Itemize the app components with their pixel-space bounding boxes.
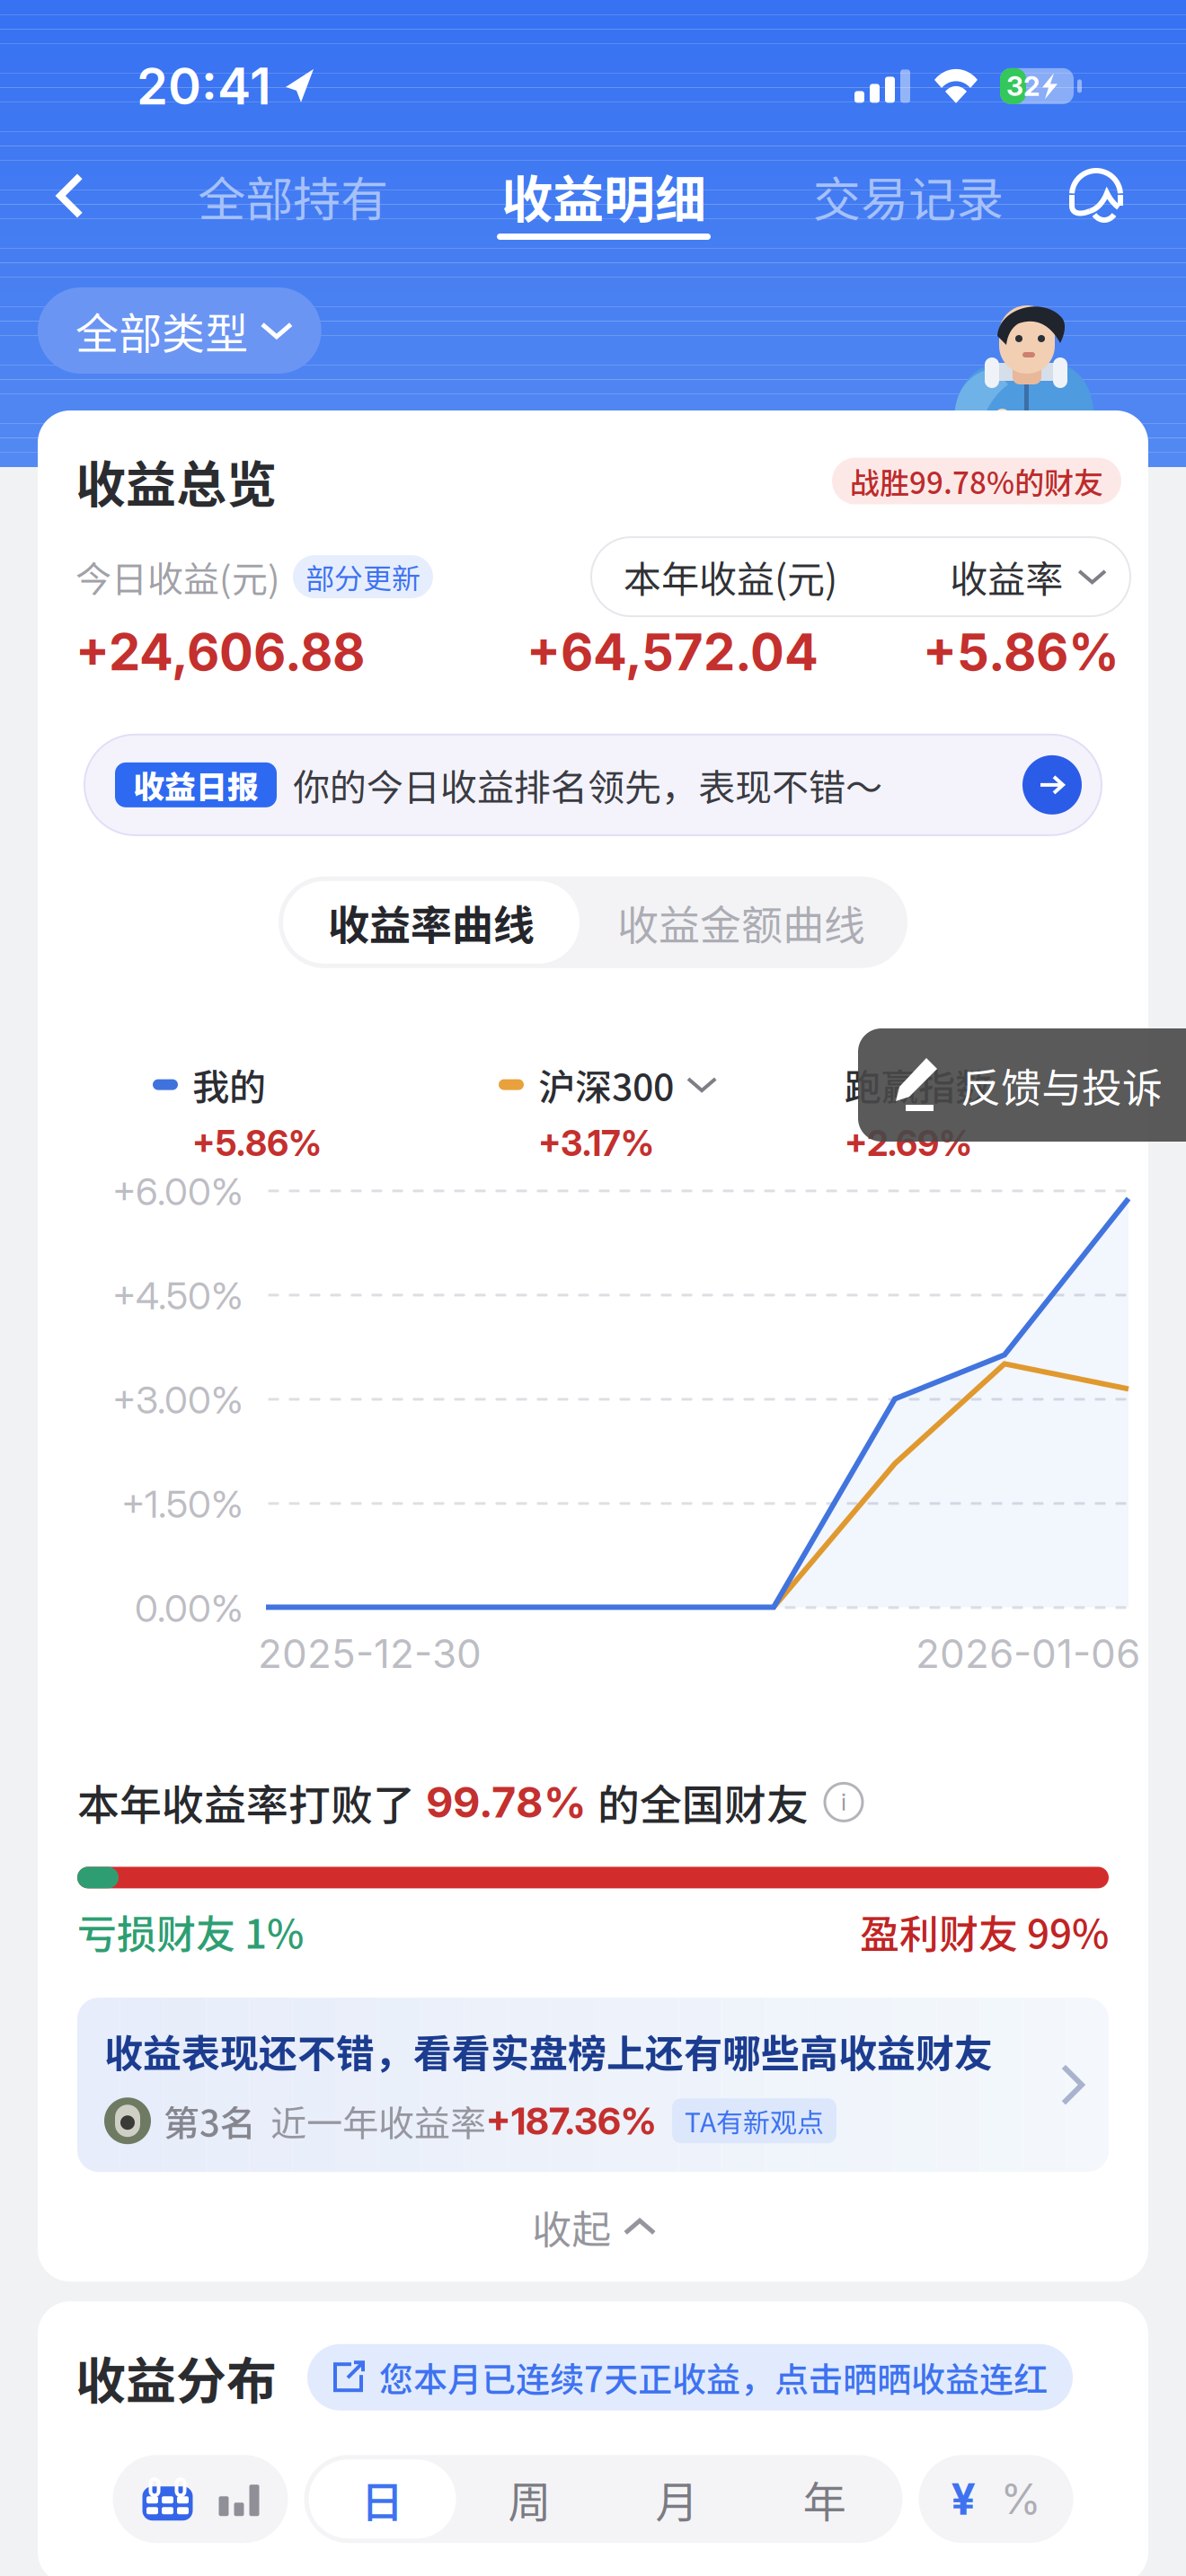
staticText: 你的今日收益排名领先，表现不错～ [293, 758, 882, 812]
staticText: 收益表现还不错，看看实盘榜上还有哪些高收益财友 [104, 2023, 993, 2079]
staticText: 收益总览 [75, 445, 277, 517]
staticText: +3.17% [538, 1122, 654, 1164]
staticText: 收益率 [950, 549, 1063, 604]
button[interactable]: 周 [456, 2460, 603, 2539]
button[interactable]: 全部持有 [138, 158, 447, 234]
staticText: 今日收益(元) [75, 551, 280, 603]
staticText: +64,572.04 [527, 622, 819, 683]
button[interactable]: 收益日报 [84, 735, 1102, 835]
button[interactable]: 收起 [38, 2172, 1148, 2282]
staticText: 全部持有 [198, 161, 388, 230]
button[interactable]: 年 [751, 2460, 898, 2539]
staticText: 月 [655, 2468, 699, 2530]
staticText: +5.86% [192, 1122, 322, 1164]
button[interactable]: 日 [309, 2460, 456, 2539]
staticText: 的全国财友 [597, 1772, 809, 1833]
staticText: +1.50% [121, 1481, 243, 1527]
button[interactable]: 反馈与投诉 [858, 1028, 1186, 1142]
button[interactable]: 柱状图 [219, 2482, 259, 2516]
staticText: % [1000, 2474, 1041, 2524]
staticText: 战胜99.78%的财友 [850, 460, 1103, 503]
staticText: 周 [508, 2468, 551, 2530]
staticText: 收益分布 [75, 2341, 277, 2414]
staticText: 本年收益(元) [624, 549, 837, 604]
staticText: 全部类型 [75, 299, 248, 362]
button[interactable]: ¥ [951, 2473, 975, 2525]
staticText: +4.50% [112, 1273, 243, 1318]
staticText: 年 [803, 2468, 846, 2530]
button[interactable]: 全部类型 [38, 287, 321, 374]
staticText: 跑赢指数 [845, 1058, 992, 1111]
button[interactable]: 收益表现还不错，看看实盘榜上还有哪些高收益财友 [77, 1998, 1109, 2172]
staticText: 收益明细 [501, 159, 706, 233]
staticText: 收益金额曲线 [617, 892, 865, 952]
staticText: +24,606.88 [75, 622, 365, 683]
button[interactable]: % [1000, 2474, 1041, 2524]
staticText: ¥ [951, 2473, 975, 2525]
button[interactable]: 收益率曲线 [283, 881, 580, 964]
staticText: +187.36% [486, 2098, 656, 2144]
staticText: 99.78% [426, 1777, 587, 1828]
staticText: +3.00% [112, 1377, 243, 1423]
button[interactable]: 客服 [1057, 158, 1136, 234]
staticText: 您本月已连续7天正收益，点击晒晒收益连红 [379, 2353, 1048, 2402]
staticText: 沪深300 [538, 1058, 674, 1111]
staticText: 近一年收益率 [270, 2095, 486, 2147]
button[interactable]: 月 [603, 2460, 751, 2539]
staticText: 0.00% [135, 1585, 243, 1631]
staticText: 日 [361, 2468, 404, 2530]
button[interactable]: 交易记录 [760, 158, 1057, 234]
staticText: 交易记录 [813, 161, 1004, 230]
staticText: 2025-12-30 [258, 1630, 482, 1677]
button[interactable]: 收益金额曲线 [580, 881, 903, 964]
staticText: 部分更新 [305, 556, 420, 597]
staticText: 32 [1006, 70, 1040, 102]
staticText: 亏损财友 1% [77, 1903, 304, 1960]
staticText: 2026-01-06 [916, 1630, 1140, 1677]
staticText: 20:41 [137, 56, 271, 117]
button[interactable]: 本年收益(元) [591, 537, 1130, 616]
button[interactable]: 收益明细 [447, 158, 760, 240]
button[interactable]: 返回 [2, 158, 138, 234]
staticText: 第3名 [164, 2095, 256, 2147]
staticText: 反馈与投诉 [960, 1056, 1163, 1114]
staticText: 盈利财友 99% [860, 1903, 1109, 1960]
staticText: 收益率曲线 [328, 892, 535, 952]
staticText: 收起 [532, 2198, 611, 2255]
staticText: 我的 [192, 1058, 266, 1111]
staticText: +6.00% [112, 1169, 243, 1214]
staticText: TA有新观点 [685, 2101, 824, 2140]
button[interactable]: 日历视图 [142, 2477, 194, 2521]
staticText: +2.69% [845, 1122, 972, 1164]
button[interactable]: 您本月已连续7天正收益，点击晒晒收益连红 [307, 2344, 1073, 2410]
staticText: +5.86% [923, 622, 1120, 683]
staticText: 本年收益率打败了 [77, 1772, 415, 1833]
staticText: 收益日报 [133, 762, 259, 808]
staticText: i [841, 1788, 846, 1816]
